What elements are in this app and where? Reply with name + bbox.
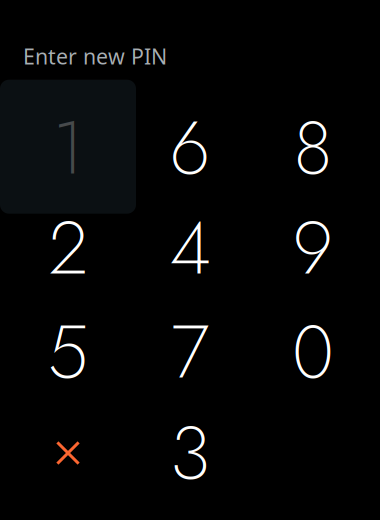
button[interactable]: 2: [0, 181, 136, 315]
button[interactable]: 5: [0, 285, 136, 419]
staticText: 6: [169, 95, 210, 201]
button[interactable]: 0: [245, 285, 380, 419]
button[interactable]: Delete: [0, 386, 136, 520]
staticText: 8: [293, 95, 332, 201]
staticText: 3: [170, 400, 210, 506]
button[interactable]: 4: [122, 181, 258, 315]
button[interactable]: 9: [245, 181, 380, 315]
button[interactable]: 8: [245, 81, 380, 215]
button[interactable]: 7: [122, 285, 258, 419]
staticText: 2: [48, 195, 87, 301]
staticText: 4: [169, 195, 210, 301]
button[interactable]: 3: [122, 386, 258, 520]
staticText: 9: [292, 195, 333, 301]
staticText: Enter new PIN: [23, 42, 167, 70]
button[interactable]: 1: [0, 81, 136, 215]
staticText: 7: [171, 299, 209, 405]
staticText: 0: [292, 299, 334, 405]
button[interactable]: 6: [122, 81, 258, 215]
staticText: 5: [47, 299, 88, 405]
staticText: 1: [52, 95, 83, 201]
